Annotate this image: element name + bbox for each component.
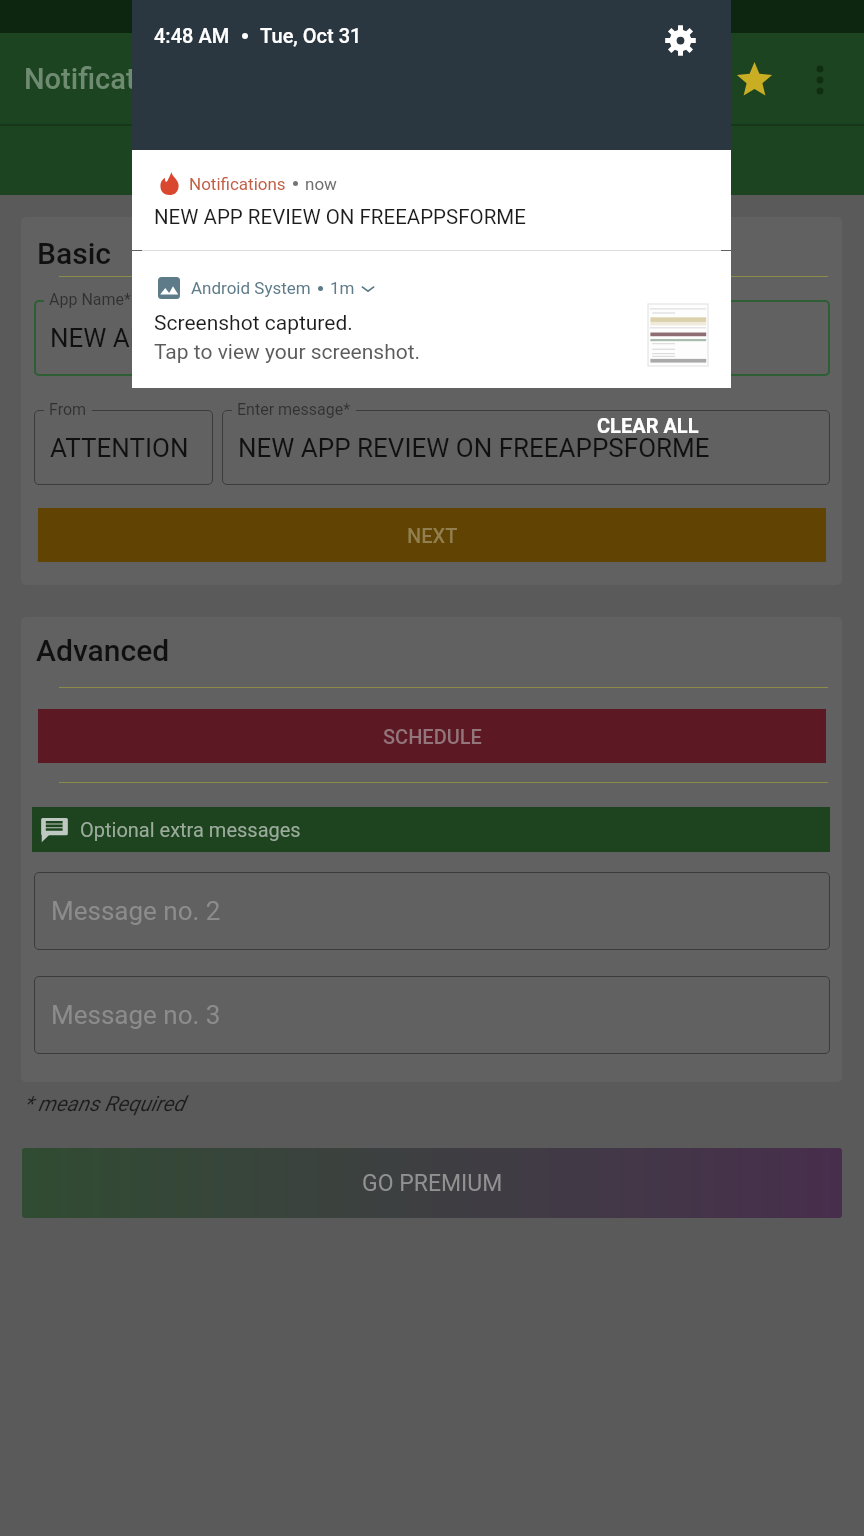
staticText: Notifications [24, 62, 191, 96]
button[interactable]: Notifications [132, 150, 731, 250]
button[interactable]: Message no. 3 [34, 976, 830, 1054]
staticText: Tue, Oct 31 [260, 24, 362, 47]
staticText: NEW APP REVIEW ON FREEAPPSFORME [238, 433, 710, 463]
staticText: 1m [330, 278, 355, 298]
button[interactable]: ATTENTION [34, 410, 213, 485]
staticText: NEW APP REVIEW ON FREEAPPSFORME [154, 205, 526, 229]
staticText: Message no. 2 [51, 896, 221, 926]
staticText: App Name* [49, 290, 131, 309]
button[interactable]: NEW APP REVIEW ON FREEAPPSFORME [222, 410, 830, 485]
staticText: CLEAR ALL [597, 414, 699, 437]
staticText: Android System [191, 278, 311, 298]
staticText: 4:48 AM [154, 24, 230, 47]
staticText: Basic [37, 236, 112, 271]
button[interactable]: Optional extra messages [40, 807, 830, 852]
staticText: ATTENTION [50, 433, 189, 463]
staticText: Screenshot captured. [154, 311, 353, 336]
staticText: * means Required [24, 1092, 185, 1117]
staticText: From [49, 400, 87, 419]
button[interactable]: Favorite [727, 52, 782, 107]
button[interactable]: NEXT [38, 508, 826, 562]
button[interactable]: NEW APP REVIEW ON FREEA [34, 300, 830, 376]
button[interactable]: Message no. 2 [34, 872, 830, 950]
button[interactable]: Settings [656, 16, 704, 64]
button[interactable]: SCHEDULE [38, 709, 826, 763]
staticText: NEW APP REVIEW ON FREEA [50, 323, 388, 353]
staticText: Optional extra messages [80, 818, 301, 841]
staticText: SCHEDULE [383, 725, 482, 748]
staticText: Tap to view your screenshot. [154, 340, 421, 365]
button[interactable]: More options [792, 52, 848, 108]
staticText: now [305, 174, 337, 194]
staticText: NEXT [407, 524, 458, 547]
staticText: Message no. 3 [51, 1000, 221, 1030]
staticText: Notifications [189, 174, 286, 194]
button[interactable]: Android System [132, 251, 731, 388]
button[interactable]: CLEAR ALL [570, 404, 726, 446]
staticText: Enter message* [237, 400, 351, 419]
staticText: Advanced [36, 633, 170, 668]
staticText: GO PREMIUM [362, 1170, 503, 1197]
button[interactable]: GO PREMIUM [22, 1148, 842, 1218]
